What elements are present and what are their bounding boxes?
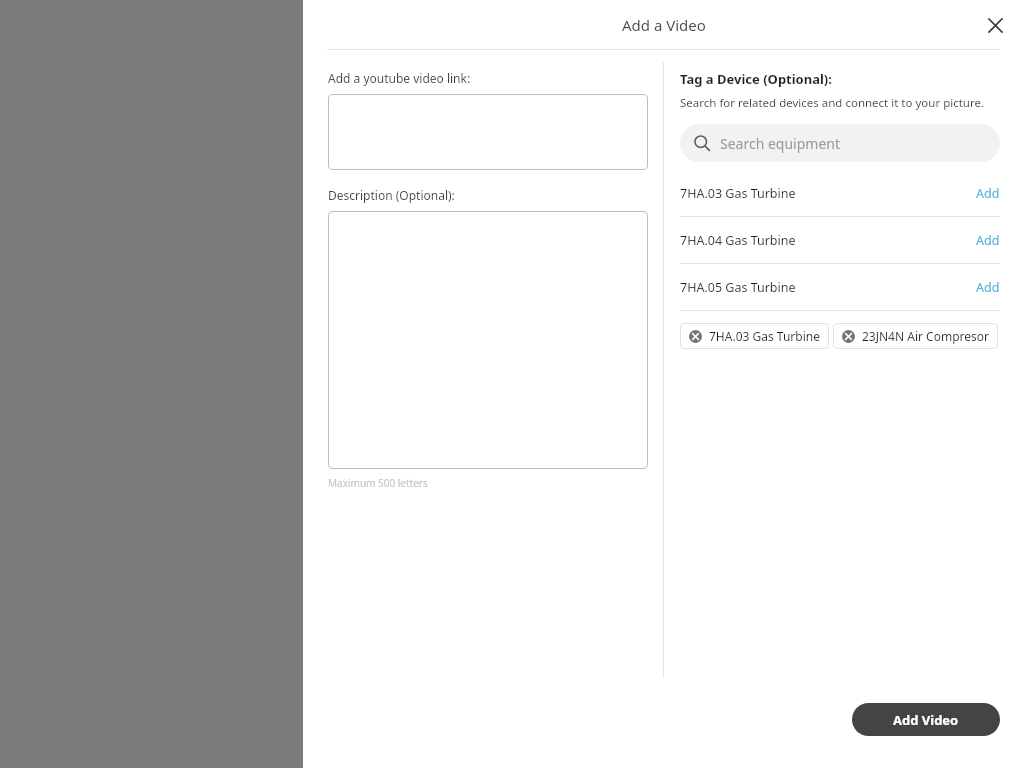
button[interactable]: Close (979, 9, 1011, 41)
button[interactable]: Remove 23JN4N Air Compresor (833, 323, 998, 349)
staticText: 7HA.03 Gas Turbine (709, 328, 820, 344)
button[interactable] (328, 211, 648, 469)
staticText: 7HA.04 Gas Turbine (680, 232, 976, 249)
button[interactable]: Remove 7HA.03 Gas Turbine (680, 323, 829, 349)
staticText: Add (976, 185, 1000, 202)
staticText: Add (976, 279, 1000, 296)
staticText: 23JN4N Air Compresor (862, 328, 989, 344)
staticText: Add a youtube video link: (328, 70, 471, 86)
button[interactable]: 7HA.03 Gas Turbine (680, 170, 1000, 216)
button[interactable]: Search equipment (680, 124, 1000, 162)
button[interactable]: 7HA.05 Gas Turbine (680, 264, 1000, 310)
button[interactable]: 7HA.04 Gas Turbine (680, 217, 1000, 263)
staticText: 7HA.05 Gas Turbine (680, 279, 976, 296)
other: Remove 7HA.03 Gas Turbine (689, 330, 702, 343)
staticText: 7HA.03 Gas Turbine (680, 185, 976, 202)
other: Remove 23JN4N Air Compresor (842, 330, 855, 343)
staticText: Tag a Device (Optional): (680, 70, 832, 88)
button[interactable] (328, 94, 648, 170)
staticText: Maximum 500 letters (328, 476, 428, 490)
button[interactable]: Add Video (852, 703, 1000, 736)
staticText: Add a Video (622, 15, 706, 35)
staticText: Add (976, 232, 1000, 249)
staticText: Search for related devices and connect i… (680, 95, 985, 111)
staticText: Search equipment (720, 134, 841, 153)
staticText: Description (Optional): (328, 187, 455, 203)
staticText: Add Video (893, 711, 959, 729)
